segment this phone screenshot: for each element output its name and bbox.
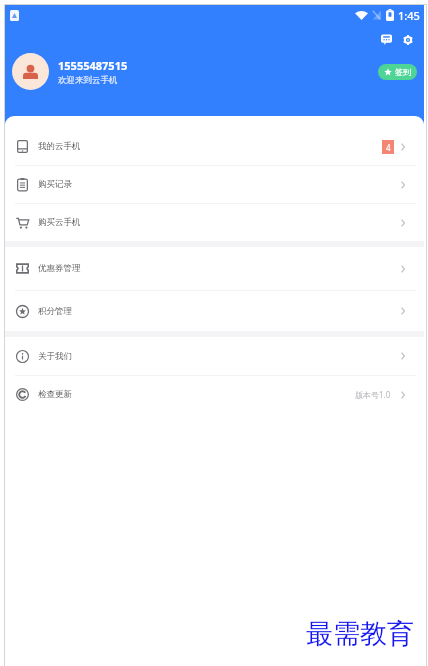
button[interactable]: Settings (397, 29, 418, 50)
staticText: 检查更新 (38, 389, 72, 400)
button[interactable]: 关于我们 (5, 337, 424, 375)
button[interactable]: 优惠券管理 (5, 247, 424, 290)
button[interactable]: 签到 (378, 64, 417, 80)
staticText: 签到 (395, 67, 411, 77)
staticText: 我的云手机 (38, 141, 81, 152)
button[interactable]: 购买记录 (5, 166, 424, 203)
staticText: 版本号1.0 (355, 389, 391, 400)
staticText: 最需教育 (306, 617, 414, 651)
staticText: 购买记录 (38, 179, 72, 190)
staticText: 1:45 (398, 8, 420, 23)
staticText: 欢迎来到云手机 (58, 75, 118, 86)
button[interactable]: 我的云手机 (5, 128, 424, 165)
button[interactable]: 购买云手机 (5, 204, 424, 241)
staticText: 4 (386, 142, 391, 153)
staticText: 优惠券管理 (38, 263, 81, 274)
staticText: 购买云手机 (38, 217, 81, 228)
staticText: 15555487515 (58, 58, 128, 73)
button[interactable]: 积分管理 (5, 291, 424, 331)
button[interactable]: Messages (376, 29, 397, 50)
button[interactable]: 检查更新 (5, 376, 424, 413)
staticText: 积分管理 (38, 306, 72, 317)
staticText: 关于我们 (38, 351, 72, 362)
